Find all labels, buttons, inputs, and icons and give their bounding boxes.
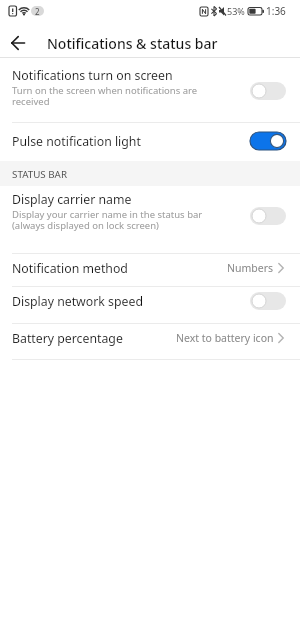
button[interactable] [0,123,300,161]
button[interactable] [250,207,286,225]
staticText: Display network speed [12,293,143,310]
button[interactable] [250,82,286,100]
button[interactable] [0,58,300,122]
button[interactable] [0,30,40,56]
staticText: Notifications & status bar [47,34,218,53]
staticText: Numbers [227,261,274,275]
button[interactable] [0,254,300,286]
staticText: (always displayed on lock screen) [12,219,159,232]
staticText: Pulse notification light [12,133,141,150]
staticText: 1:36 [266,4,286,18]
button[interactable] [0,287,300,323]
staticText: 2 [35,6,40,16]
staticText: Next to battery icon [176,331,274,345]
staticText: STATUS BAR [12,168,67,181]
staticText: Battery percentage [12,330,123,347]
staticText: Display your carrier name in the status … [12,208,203,221]
button[interactable] [0,186,300,253]
staticText: Notifications turn on screen [12,67,173,84]
staticText: Display carrier name [12,191,132,208]
staticText: received [12,95,50,108]
staticText: Notification method [12,260,128,277]
button[interactable] [250,292,286,310]
button[interactable] [0,324,300,359]
staticText: Turn on the screen when notifications ar… [12,84,198,97]
button[interactable] [250,132,286,150]
staticText: 53% [227,5,245,17]
